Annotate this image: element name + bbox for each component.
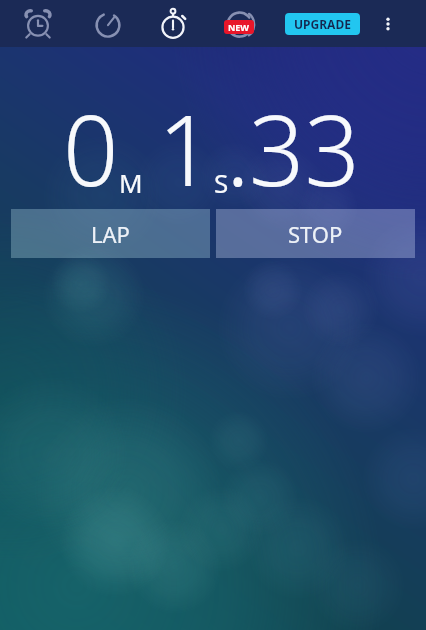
staticText: 0	[63, 82, 119, 214]
button[interactable]: UPGRADE	[285, 13, 360, 35]
button[interactable]: Stopwatch	[140, 0, 206, 47]
staticText: UPGRADE	[294, 16, 351, 32]
staticText: STOP	[288, 219, 343, 249]
staticText: .	[226, 82, 250, 214]
staticText: 1	[158, 82, 214, 214]
button[interactable]: Alarm	[0, 0, 76, 47]
staticText: S	[214, 165, 229, 200]
staticText: 33	[249, 82, 360, 214]
button[interactable]: Timer	[76, 0, 140, 47]
staticText: NEW	[228, 21, 250, 33]
staticText: LAP	[91, 219, 130, 249]
staticText: M	[119, 165, 143, 200]
button[interactable]: STOP	[216, 209, 415, 258]
button[interactable]: More options	[372, 0, 404, 47]
button[interactable]: LAP	[11, 209, 210, 258]
button[interactable]: Bedtime	[206, 0, 272, 47]
